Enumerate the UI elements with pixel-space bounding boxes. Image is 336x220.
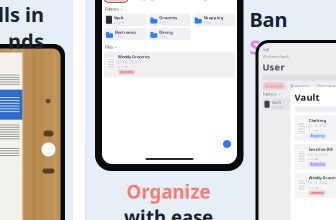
button[interactable]: Vault bbox=[104, 14, 146, 26]
staticText: Folders › bbox=[262, 91, 279, 96]
staticText: Groceries bbox=[120, 70, 133, 74]
staticText: nds bbox=[8, 28, 44, 54]
staticText: 4.2 MB bbox=[308, 129, 318, 132]
staticText: 2 items bbox=[322, 105, 332, 109]
staticText: Groceries bbox=[310, 191, 323, 195]
staticText: Jul 12, 2024 bbox=[308, 153, 327, 156]
staticText: lls in bbox=[0, 1, 44, 28]
staticText: 2 items bbox=[271, 105, 281, 109]
staticText: 4.2 MB bbox=[308, 186, 318, 189]
staticText: Jul 12, 2024 bbox=[118, 60, 137, 64]
staticText: Jul 12, 2024 bbox=[308, 124, 327, 128]
staticText: User bbox=[262, 61, 284, 73]
staticText: 1 file bbox=[115, 35, 123, 39]
staticText: Folders › bbox=[105, 6, 122, 12]
staticText: Electronics bbox=[310, 163, 324, 166]
staticText: with ease bbox=[124, 205, 213, 220]
button[interactable]: Shopping bbox=[131, 0, 157, 2]
button[interactable]: Groceries bbox=[104, 0, 128, 2]
staticText: 4.2 MB bbox=[118, 65, 128, 68]
button[interactable]: Groceries bbox=[148, 14, 191, 26]
staticText: 9:41 bbox=[262, 47, 269, 52]
button[interactable]: Shopping bbox=[193, 14, 235, 26]
staticText: Shopping bbox=[290, 83, 310, 88]
staticText: Dining bbox=[159, 29, 173, 35]
staticText: Files › bbox=[105, 44, 116, 50]
staticText: 3 files bbox=[159, 21, 168, 24]
button[interactable]: Clothing bbox=[290, 115, 336, 141]
staticText: Shopping bbox=[204, 15, 224, 20]
staticText: Welcome back, bbox=[262, 54, 289, 59]
staticText: Sensitive Bill bbox=[308, 146, 332, 152]
staticText: Weekly Groceries bbox=[118, 54, 150, 59]
staticText: 1 file bbox=[159, 35, 167, 39]
staticText: Ban bbox=[249, 6, 287, 33]
staticText: 2 items bbox=[114, 21, 124, 24]
button[interactable]: Sensitive Bill bbox=[290, 144, 336, 169]
staticText: Clothing bbox=[308, 118, 326, 123]
staticText: Weekly Groceries bbox=[308, 175, 336, 180]
button[interactable]: Electronics bbox=[104, 28, 146, 40]
staticText: Vault bbox=[114, 15, 124, 20]
button[interactable]: Add bbox=[223, 140, 231, 148]
button[interactable]: Dining bbox=[190, 0, 210, 2]
staticText: Organize bbox=[126, 179, 210, 204]
button[interactable]: Weekly Groceries bbox=[290, 172, 336, 198]
staticText: Electronics bbox=[317, 83, 336, 88]
button[interactable]: Dining bbox=[148, 28, 191, 40]
staticText: Se bbox=[249, 34, 272, 60]
button[interactable]: Weekly Groceries bbox=[104, 52, 235, 77]
staticText: 1 file bbox=[204, 21, 212, 24]
staticText: 4.2 MB bbox=[308, 157, 318, 161]
staticText: Vault bbox=[294, 91, 319, 103]
staticText: Groceries bbox=[265, 83, 283, 88]
staticText: Electronics bbox=[115, 29, 136, 35]
staticText: Groceries bbox=[159, 15, 177, 20]
staticText: Jul 12, 2024 bbox=[308, 181, 327, 185]
staticText: Dining bbox=[193, 0, 207, 1]
staticText: Shopping bbox=[134, 0, 154, 1]
staticText: Vault bbox=[271, 99, 281, 105]
staticText: Shopping bbox=[310, 134, 324, 138]
